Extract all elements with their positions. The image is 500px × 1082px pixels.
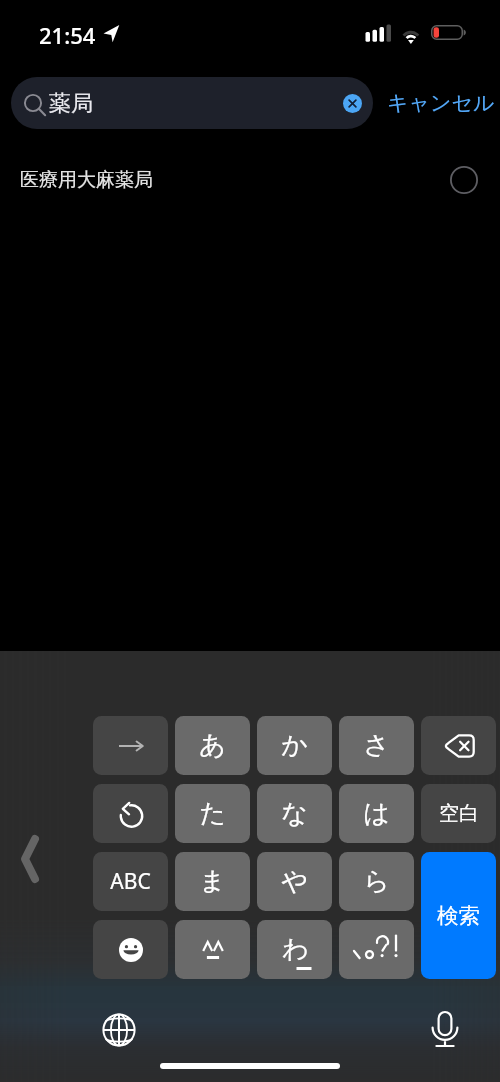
button[interactable]: Change keyboard [99, 1010, 139, 1050]
button[interactable]: Dictate [425, 1009, 465, 1049]
button[interactable]: さ [339, 716, 414, 775]
button[interactable]: 検索 [421, 852, 496, 979]
button[interactable]: わ [257, 920, 332, 979]
staticText: わ [282, 933, 309, 966]
staticText: か [281, 729, 308, 762]
staticText: ま [199, 865, 226, 898]
staticText: ABC [110, 867, 151, 896]
button[interactable]: や [257, 852, 332, 911]
staticText: や [281, 865, 308, 898]
button[interactable]: Undo [93, 784, 168, 843]
staticText: 21:54 [39, 20, 96, 50]
staticText: は [363, 797, 390, 830]
button[interactable]: 薬局 [11, 77, 373, 129]
staticText: キャンセル [387, 90, 495, 116]
button[interactable]: Clear text [343, 94, 362, 113]
button[interactable]: は [339, 784, 414, 843]
staticText: 薬局 [49, 90, 93, 118]
button[interactable] [339, 920, 414, 979]
button[interactable]: キャンセル [387, 77, 497, 129]
button[interactable]: あ [175, 716, 250, 775]
staticText: な [281, 797, 308, 830]
button[interactable]: Next [93, 716, 168, 775]
staticText: 空白 [439, 801, 479, 826]
button[interactable]: ABC [93, 852, 168, 911]
button[interactable]: Emoji [93, 920, 168, 979]
button[interactable]: 医療用大麻薬局 [0, 152, 500, 210]
button[interactable]: か [257, 716, 332, 775]
button[interactable]: ら [339, 852, 414, 911]
button[interactable]: 空白 [421, 784, 496, 843]
staticText: 検索 [437, 902, 480, 929]
button[interactable]: Delete [421, 716, 496, 775]
button[interactable] [175, 920, 250, 979]
staticText: ら [363, 865, 390, 898]
other: Previous candidates [21, 835, 39, 883]
button[interactable]: た [175, 784, 250, 843]
staticText: あ [199, 729, 226, 762]
button[interactable]: な [257, 784, 332, 843]
staticText: さ [363, 729, 390, 762]
button[interactable]: ま [175, 852, 250, 911]
staticText: 医療用大麻薬局 [20, 168, 153, 192]
staticText: た [199, 797, 226, 830]
